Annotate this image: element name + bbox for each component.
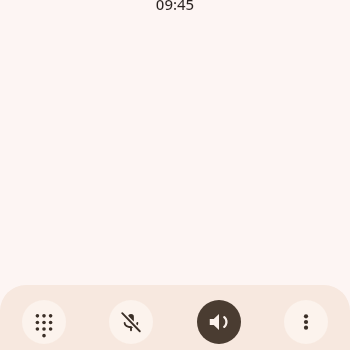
button[interactable]: Dialpad (22, 300, 66, 344)
button[interactable]: Mute microphone (109, 300, 153, 344)
staticText: 09:45 (0, 0, 350, 14)
button[interactable]: More options (284, 300, 328, 344)
button[interactable]: Speaker (197, 300, 241, 344)
